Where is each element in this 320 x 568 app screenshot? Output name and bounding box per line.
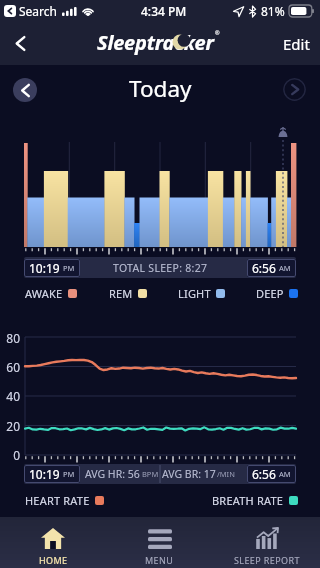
staticText: 20 [6, 418, 20, 434]
staticText: 6:56 [252, 466, 276, 482]
staticText: 6:56 [252, 260, 276, 276]
staticText: BREATH RATE [212, 493, 284, 508]
staticText: REM [109, 286, 133, 301]
staticText: AWAKE [25, 286, 63, 301]
button[interactable]: SLEEP REPORT [213, 517, 320, 568]
staticText: Sleeptracker [97, 29, 214, 56]
staticText: 0 [13, 447, 20, 463]
button[interactable]: Next day [283, 78, 306, 101]
button[interactable]: Previous day [13, 78, 37, 102]
staticText: /MIN [217, 469, 235, 479]
staticText: 10:19 [29, 260, 60, 276]
staticText: 10:19 [29, 466, 60, 482]
staticText: Edit [283, 34, 310, 54]
staticText: PM [63, 469, 75, 479]
staticText: 40 [6, 388, 20, 404]
staticText: BPM [142, 469, 159, 479]
staticText: 4:34 PM [141, 3, 187, 19]
staticText: DEEP [256, 286, 284, 301]
staticText: 60 [6, 359, 20, 375]
staticText: 80 [6, 330, 20, 346]
button[interactable]: Edit [283, 22, 310, 65]
staticText: AVG HR: 56 [85, 467, 140, 481]
staticText: PM [63, 263, 75, 273]
staticText: AVG BR: 17 [162, 467, 216, 481]
staticText: Search [19, 3, 57, 19]
staticText: AM [279, 469, 291, 479]
staticText: ® [215, 29, 220, 36]
staticText: LIGHT [178, 286, 211, 301]
staticText: SLEEP REPORT [234, 554, 300, 566]
staticText: TOTAL SLEEP: 8:27 [113, 261, 208, 275]
staticText: 81% [261, 3, 285, 19]
button[interactable]: MENU [106, 517, 213, 568]
button[interactable]: HOME [0, 517, 106, 568]
staticText: HEART RATE [25, 493, 90, 508]
staticText: MENU [145, 554, 174, 566]
staticText: HOME [39, 554, 68, 566]
staticText: Today [129, 73, 192, 104]
staticText: AM [279, 263, 291, 273]
button[interactable]: Back [0, 22, 40, 65]
